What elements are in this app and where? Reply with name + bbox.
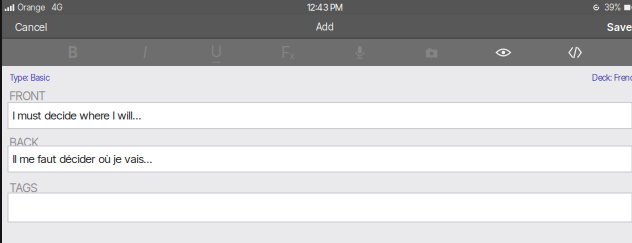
- button[interactable]: FRONT: [0, 66, 632, 243]
- staticText: I must decide where I will...: [12, 109, 141, 122]
- staticText: Deck: French: [592, 72, 632, 83]
- staticText: FRONT: [9, 89, 45, 103]
- staticText: Cancel: [15, 20, 47, 33]
- button[interactable]: BACK: [0, 66, 632, 243]
- button[interactable]: Deck: French: [585, 71, 632, 84]
- button[interactable]: Type: Basic: [0, 71, 49, 84]
- button[interactable]: Preview: [467, 39, 539, 66]
- staticText: U: [211, 42, 222, 61]
- button[interactable]: Cancel: [8, 15, 54, 38]
- staticText: Type: Basic: [9, 72, 49, 83]
- staticText: x: [290, 50, 295, 62]
- staticText: Save: [607, 20, 632, 33]
- staticText: Il me faut décider où je vais...: [12, 152, 152, 166]
- staticText: I: [143, 43, 146, 62]
- staticText: Orange: [17, 2, 45, 13]
- staticText: 12:43 PM: [307, 2, 343, 13]
- staticText: Add: [316, 21, 334, 33]
- button[interactable]: Edit HTML: [539, 39, 611, 66]
- button[interactable]: Bold: [37, 39, 109, 66]
- button[interactable]: Save: [607, 15, 632, 38]
- staticText: BACK: [9, 135, 38, 150]
- button[interactable]: Add picture: [396, 39, 468, 66]
- staticText: F: [281, 43, 289, 62]
- button[interactable]: TAGS: [0, 66, 632, 243]
- staticText: TAGS: [9, 181, 37, 195]
- staticText: B: [68, 43, 78, 62]
- staticText: 4G: [51, 2, 62, 13]
- staticText: 39%: [604, 2, 621, 13]
